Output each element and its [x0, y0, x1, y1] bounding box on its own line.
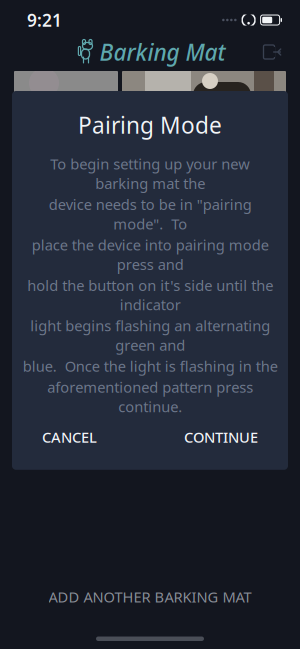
- staticText: CONTINUE: [184, 427, 258, 447]
- staticText: hold the button on it's side until the i…: [27, 275, 273, 314]
- staticText: aforementioned pattern press continue.: [47, 377, 253, 416]
- button[interactable]: CONTINUE: [174, 420, 268, 454]
- staticText: ADD ANOTHER BARKING MAT: [48, 587, 251, 606]
- staticText: blue. Once the light is flashing in the: [22, 356, 277, 376]
- staticText: Barking Mat: [99, 37, 225, 67]
- staticText: device needs to be in "pairing mode". To: [48, 195, 251, 234]
- button[interactable]: Log out: [254, 34, 294, 70]
- button[interactable]: ADD ANOTHER BARKING MAT: [0, 577, 300, 616]
- staticText: To begin setting up your new barking mat…: [50, 154, 250, 193]
- staticText: place the device into pairing mode press…: [31, 235, 268, 274]
- staticText: CANCEL: [42, 427, 97, 447]
- button[interactable]: CANCEL: [32, 420, 107, 454]
- staticText: Pairing Mode: [78, 110, 222, 140]
- staticText: 9:21: [27, 8, 62, 31]
- staticText: light begins flashing an alternating gre…: [30, 316, 270, 355]
